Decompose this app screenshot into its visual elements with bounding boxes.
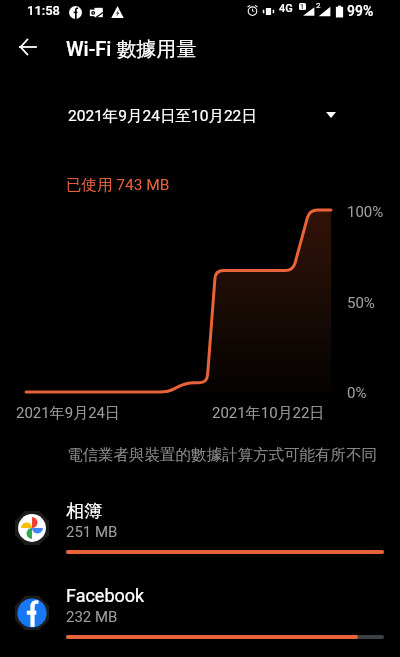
staticText: 11:58 [27, 3, 61, 18]
button[interactable]: Facebook [0, 580, 400, 657]
staticText: 100% [347, 203, 384, 221]
staticText: 4G [279, 2, 293, 15]
button[interactable]: Back [4, 23, 52, 71]
staticText: 1 [300, 3, 305, 10]
staticText: Facebook [66, 585, 145, 606]
staticText: 2021年10月22日 [212, 404, 325, 423]
staticText: 2021年9月24日 [16, 404, 121, 423]
staticText: Wi-Fi 數據用量 [66, 37, 197, 62]
button[interactable]: 相簿 [0, 495, 400, 572]
staticText: 50% [347, 294, 375, 312]
staticText: 2 [316, 1, 321, 10]
staticText: 0% [347, 384, 367, 402]
staticText: 232 MB [66, 608, 118, 626]
staticText: 電信業者與裝置的數據計算方式可能有所不同 [67, 445, 377, 465]
button[interactable]: 2021年9月24日至10月22日 [52, 92, 348, 136]
staticText: 2021年9月24日至10月22日 [68, 106, 257, 126]
staticText: 相簿 [66, 500, 102, 523]
staticText: 251 MB [66, 523, 118, 541]
staticText: 99% [347, 3, 374, 19]
staticText: 已使用 743 MB [66, 175, 170, 195]
